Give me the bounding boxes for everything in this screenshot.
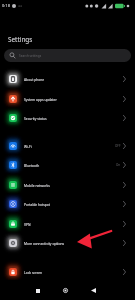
staticText: Settings (8, 35, 33, 44)
staticText: Wi-Fi (24, 144, 32, 148)
staticText: About phone (24, 77, 45, 81)
button[interactable]: System apps updater (0, 89, 135, 108)
staticText: Mobile networks (24, 183, 50, 187)
button[interactable]: Wi-Fi (0, 136, 135, 155)
button[interactable]: Portable hotspot (0, 194, 135, 213)
staticText: VPN (24, 222, 31, 226)
staticText: Portable hotspot (24, 202, 50, 206)
button[interactable]: VPN (0, 214, 135, 233)
staticText: System apps updater (24, 97, 57, 101)
staticText: Search settings (19, 54, 42, 58)
button[interactable]: About phone (0, 69, 135, 88)
button[interactable]: Home (59, 284, 72, 297)
button[interactable]: Bluetooth (0, 155, 135, 174)
button[interactable]: Lock screen (0, 262, 135, 281)
button[interactable]: Search settings (4, 49, 131, 62)
staticText: Security status (24, 116, 47, 120)
staticText: 0:18 (2, 3, 10, 8)
staticText: Lock screen (24, 270, 43, 274)
staticText: More connectivity options (24, 241, 65, 245)
button[interactable]: Recent apps (31, 284, 44, 297)
button[interactable]: Security status (0, 108, 135, 127)
button[interactable]: More connectivity options (0, 233, 135, 252)
staticText: OFF (115, 144, 121, 148)
button[interactable]: Mobile networks (0, 175, 135, 194)
staticText: Bluetooth (24, 163, 40, 167)
button[interactable]: Back (87, 284, 100, 297)
staticText: On (116, 163, 121, 167)
